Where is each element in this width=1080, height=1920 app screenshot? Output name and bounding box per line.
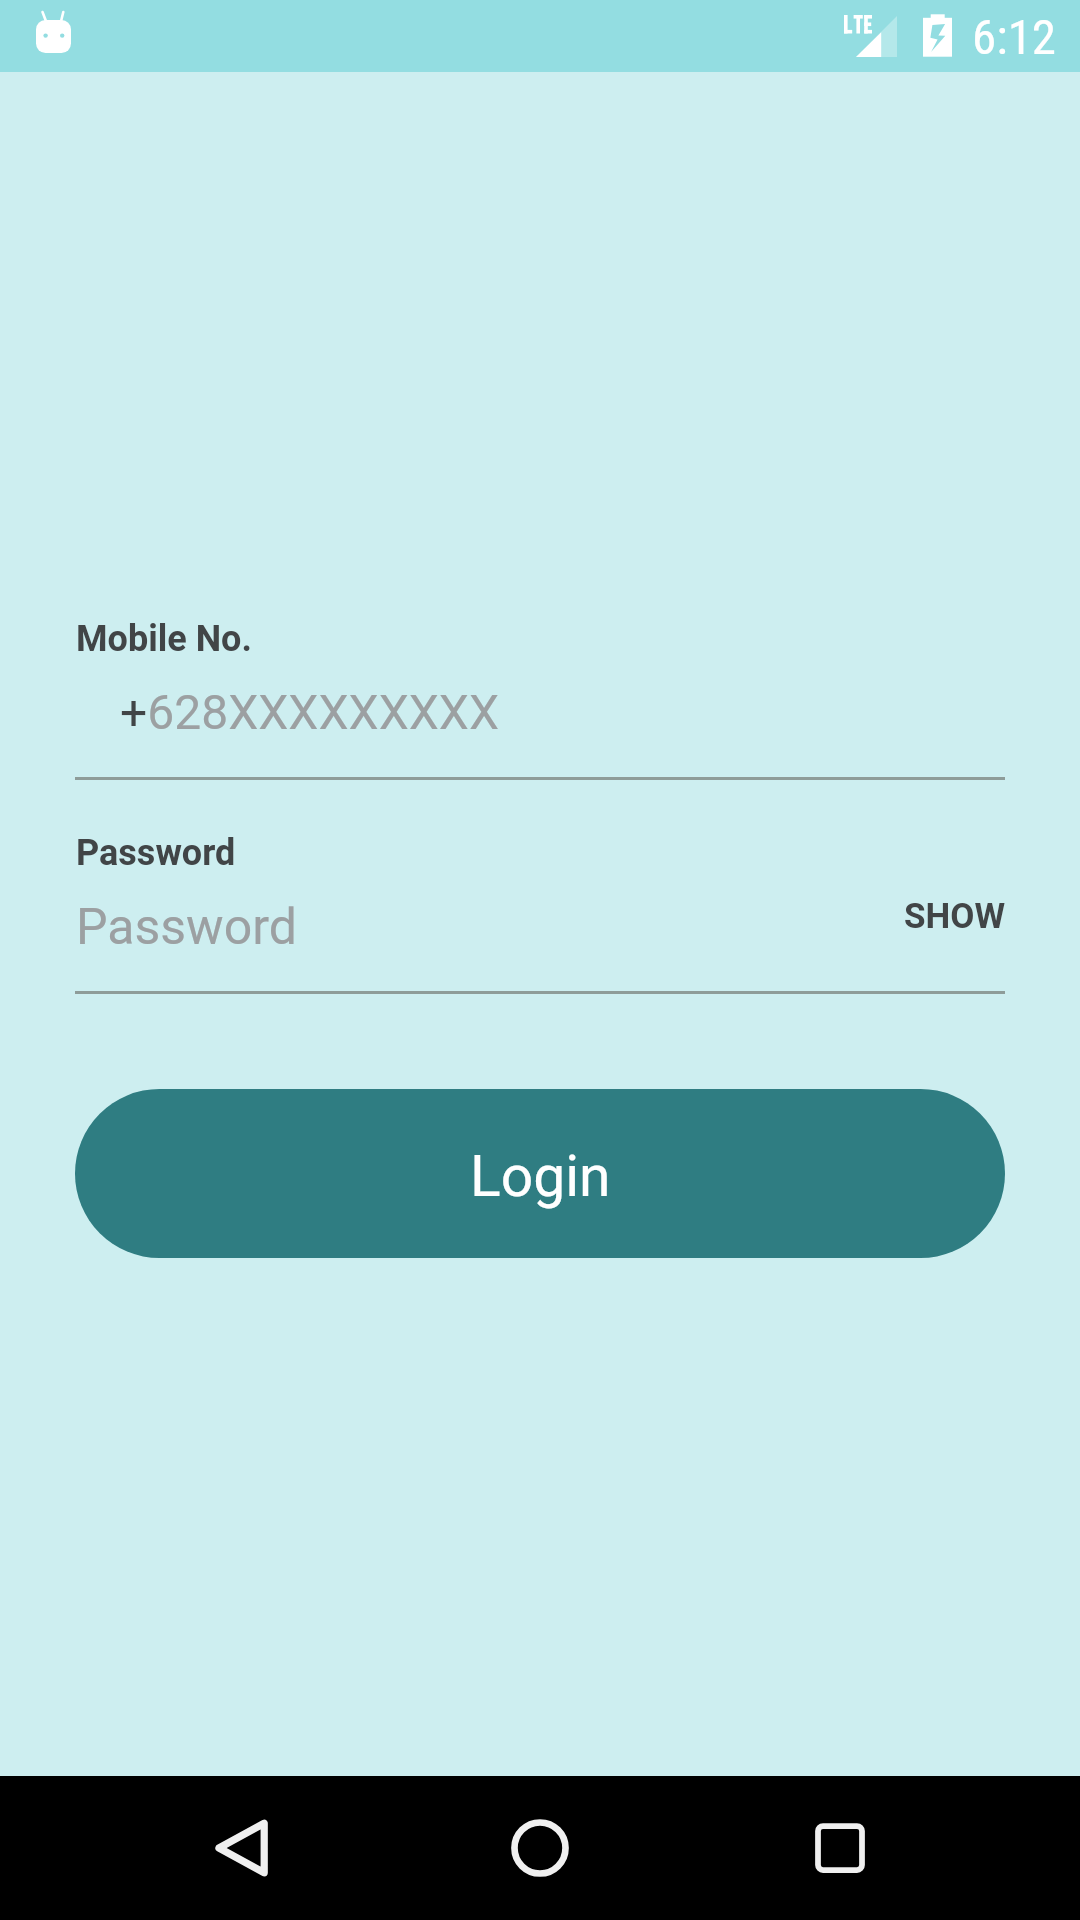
button[interactable]: SHOW (882, 878, 1028, 955)
button[interactable]: Recent apps (768, 1776, 912, 1920)
button[interactable]: Home (468, 1776, 612, 1920)
button[interactable]: Login (75, 1089, 1005, 1258)
button[interactable]: Password (75, 815, 875, 991)
staticText: Password (76, 898, 297, 957)
staticText: SHOW (904, 896, 1006, 937)
staticText: +628XXXXXXXXX (120, 684, 500, 740)
staticText: Mobile No. (76, 618, 252, 660)
staticText: Password (76, 832, 236, 874)
button[interactable]: Back (169, 1776, 313, 1920)
staticText: Login (470, 1143, 611, 1210)
other: Android (36, 10, 72, 54)
staticText: 6:12 (972, 9, 1057, 66)
button[interactable]: Mobile No. (75, 600, 1005, 780)
